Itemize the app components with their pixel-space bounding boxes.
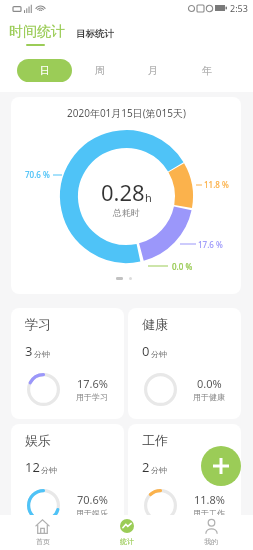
staticText: 首页 bbox=[36, 537, 50, 546]
button[interactable]: 工作 bbox=[128, 424, 241, 535]
staticText: 月 bbox=[148, 64, 158, 77]
button[interactable]: 我的 bbox=[169, 515, 253, 550]
staticText: 分钟 bbox=[151, 349, 167, 359]
staticText: 2:53 bbox=[230, 2, 248, 14]
staticText: 11.8% bbox=[194, 492, 225, 507]
staticText: 12 bbox=[25, 458, 40, 476]
staticText: 分钟 bbox=[151, 465, 167, 475]
staticText: 学习 bbox=[25, 316, 51, 332]
staticText: 3 bbox=[25, 342, 33, 360]
staticText: 0.0% bbox=[197, 376, 222, 391]
button[interactable]: 健康 bbox=[128, 308, 241, 419]
button[interactable]: 日 bbox=[17, 59, 72, 82]
staticText: 70.6 % bbox=[25, 169, 50, 180]
staticText: 17.6% bbox=[77, 376, 108, 391]
button[interactable]: 月 bbox=[137, 59, 169, 82]
staticText: 周 bbox=[95, 64, 105, 77]
staticText: 2 bbox=[142, 458, 150, 476]
staticText: 目标统计 bbox=[76, 28, 114, 40]
button[interactable]: 年 bbox=[191, 59, 223, 82]
staticText: 我的 bbox=[204, 537, 218, 546]
staticText: 工作 bbox=[142, 432, 168, 448]
staticText: 2020年01月15日(第015天) bbox=[67, 106, 186, 120]
staticText: 统计 bbox=[120, 537, 134, 546]
button[interactable]: Add bbox=[201, 446, 241, 486]
staticText: 17.6 % bbox=[198, 239, 223, 250]
staticText: 时间统计 bbox=[9, 23, 65, 41]
staticText: 0.0 % bbox=[172, 261, 193, 272]
staticText: 娱乐 bbox=[25, 432, 51, 448]
staticText: 用于学习 bbox=[76, 392, 108, 402]
staticText: h bbox=[145, 190, 152, 205]
button[interactable]: 目标统计 bbox=[76, 28, 114, 40]
button[interactable]: 首页 bbox=[0, 515, 85, 550]
button[interactable]: 时间统计 bbox=[9, 23, 65, 41]
staticText: 用于娱乐 bbox=[76, 508, 108, 518]
staticText: 健康 bbox=[142, 316, 168, 332]
staticText: 年 bbox=[202, 64, 212, 77]
staticText: 分钟 bbox=[34, 349, 50, 359]
staticText: 日 bbox=[40, 64, 50, 77]
staticText: 总耗时 bbox=[113, 207, 140, 218]
staticText: 0 bbox=[142, 342, 150, 360]
staticText: 用于工作 bbox=[193, 508, 225, 518]
staticText: 0.28 bbox=[101, 177, 145, 207]
button[interactable]: 统计 bbox=[85, 515, 169, 550]
staticText: 11.8 % bbox=[204, 179, 229, 190]
staticText: 用于健康 bbox=[193, 392, 225, 402]
button[interactable]: 周 bbox=[84, 59, 116, 82]
staticText: 70.6% bbox=[77, 492, 108, 507]
staticText: 分钟 bbox=[41, 465, 57, 475]
button[interactable]: 娱乐 bbox=[11, 424, 124, 535]
button[interactable]: 学习 bbox=[11, 308, 124, 419]
